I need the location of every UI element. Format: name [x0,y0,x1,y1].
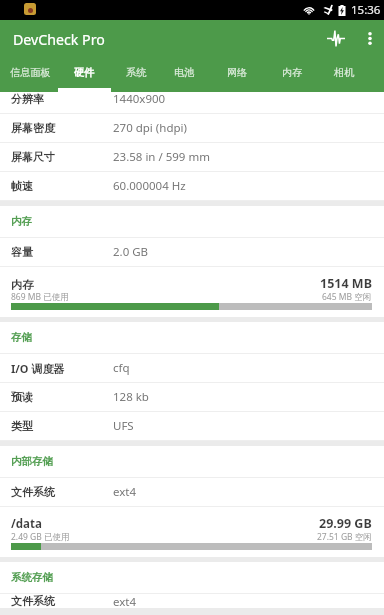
button[interactable]: 内存 [0,267,384,317]
staticText: 分辨率 [11,92,44,106]
staticText: 相机 [334,66,355,79]
staticText: 帧速 [11,179,33,193]
staticText: UFS [113,418,134,434]
staticText: 15:36 [351,2,381,18]
staticText: 硬件 [74,66,95,79]
staticText: 645 MB 空闲 [322,291,372,303]
staticText: 1514 MB [320,275,372,292]
staticText: 2.0 GB [113,244,149,260]
button[interactable]: 相机 [319,58,370,92]
staticText: ext4 [113,484,137,500]
staticText: 系统存储 [11,571,53,584]
staticText: cfq [113,360,130,376]
staticText: 27.51 GB 空闲 [317,531,372,543]
staticText: 容量 [11,245,33,259]
staticText: 电池 [174,66,195,79]
button[interactable]: Monitor [317,20,355,58]
staticText: ext4 [113,594,137,608]
staticText: 内存 [282,66,303,79]
staticText: 屏幕密度 [11,121,55,135]
staticText: 270 dpi (hdpi) [113,120,187,136]
staticText: 869 MB 已使用 [11,291,69,303]
staticText: 1440x900 [113,92,166,107]
button[interactable]: 屏幕尺寸 [0,143,384,171]
button[interactable]: 电池 [161,58,208,92]
staticText: 屏幕尺寸 [11,150,55,164]
button[interactable]: 帧速 [0,172,384,200]
staticText: 内部存储 [11,455,53,468]
staticText: DevCheck Pro [13,30,105,49]
staticText: 60.000004 Hz [113,178,186,194]
button[interactable]: 硬件 [58,58,111,92]
staticText: 文件系统 [11,485,55,499]
button[interactable]: I/O 调度器 [0,354,384,382]
staticText: 网络 [227,66,248,79]
staticText: 内存 [11,215,32,228]
staticText: 文件系统 [11,594,55,608]
button[interactable]: 类型 [0,412,384,440]
staticText: 23.58 in / 599 mm [113,149,210,165]
button[interactable]: /data [0,507,384,557]
button[interactable]: 容量 [0,238,384,266]
button[interactable]: 预读 [0,383,384,411]
staticText: 系统 [126,66,147,79]
staticText: 内存 [11,278,34,292]
button[interactable]: 系统 [111,58,161,92]
button[interactable]: More options [355,20,384,58]
button[interactable]: 信息面板 [3,58,58,92]
staticText: 类型 [11,419,33,433]
staticText: I/O 调度器 [11,361,65,376]
staticText: 信息面板 [10,66,51,79]
button[interactable]: 内存 [266,58,319,92]
staticText: 存储 [11,331,32,344]
button[interactable]: 网络 [208,58,266,92]
staticText: 128 kb [113,389,149,405]
button[interactable]: 屏幕密度 [0,114,384,142]
staticText: 2.49 GB 已使用 [11,531,70,543]
button[interactable]: 分辨率 [0,92,384,113]
button[interactable]: 文件系统 [0,478,384,506]
staticText: 29.99 GB [319,515,372,532]
button[interactable]: 文件系统 [0,594,384,608]
staticText: 预读 [11,390,33,404]
staticText: /data [11,516,42,532]
